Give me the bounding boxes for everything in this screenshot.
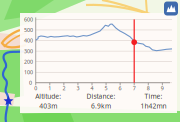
staticText: 300	[24, 48, 33, 55]
staticText: 403m	[39, 102, 57, 110]
staticText: Altitude:	[35, 92, 61, 101]
staticText: 5	[104, 85, 107, 92]
staticText: 4	[90, 85, 93, 92]
button[interactable]: Elevation profile	[164, 1, 178, 15]
staticText: 1h42mn	[140, 102, 166, 110]
staticText: 500	[24, 26, 33, 33]
staticText: 0	[29, 79, 32, 86]
staticText: 6.9km	[91, 102, 111, 110]
staticText: 400	[24, 37, 33, 44]
staticText: 6	[119, 85, 122, 92]
staticText: 1	[48, 85, 51, 92]
staticText: 2	[62, 85, 65, 92]
staticText: 100	[24, 69, 33, 76]
staticText: 600	[24, 16, 33, 23]
staticText: 200	[24, 58, 33, 65]
staticText: 7	[133, 85, 136, 92]
staticText: Distance:	[86, 92, 115, 101]
staticText: 0	[34, 85, 37, 92]
staticText: 8	[147, 85, 150, 92]
staticText: Time:	[144, 92, 162, 101]
staticText: 9	[161, 85, 164, 92]
staticText: 3	[76, 85, 79, 92]
